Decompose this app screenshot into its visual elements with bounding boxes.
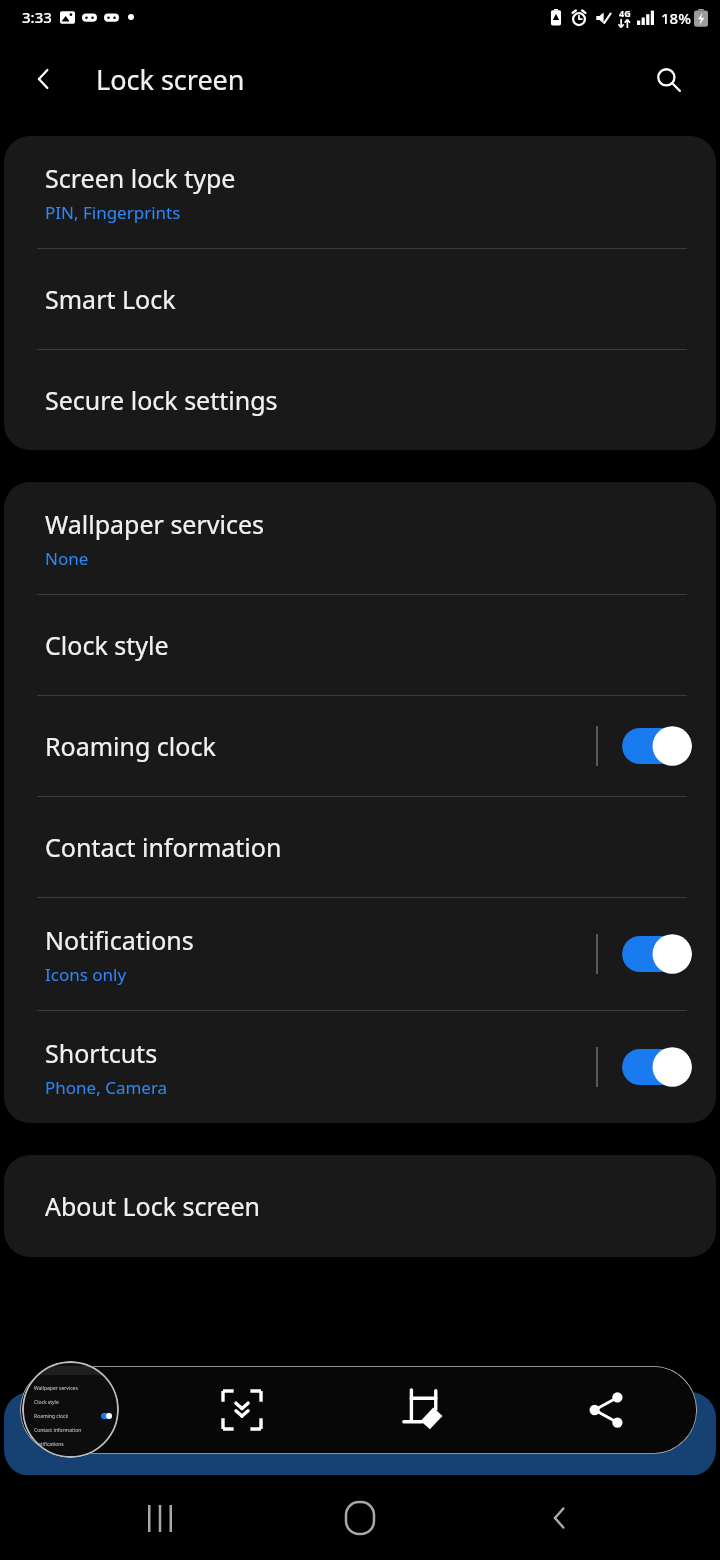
staticText: Notifications	[34, 1441, 115, 1448]
staticText: Wallpaper services	[45, 507, 265, 541]
button[interactable]: About Lock screen	[4, 1155, 716, 1257]
staticText: Clock style	[34, 1399, 115, 1406]
button[interactable]: Home	[320, 1478, 400, 1558]
staticText: Notifications	[45, 923, 194, 957]
staticText: Icons only	[45, 963, 127, 986]
button[interactable]: Looking for something else?	[4, 1392, 716, 1476]
button[interactable]: Recent apps	[120, 1478, 200, 1558]
button[interactable]: Contact information	[4, 797, 716, 897]
button[interactable]: Roaming clock	[4, 696, 716, 796]
button[interactable]: Screenshot preview	[22, 1361, 119, 1458]
staticText: Smart Lock	[45, 282, 176, 316]
button[interactable]: Shortcuts	[4, 1011, 716, 1123]
button[interactable]: Toggle on	[622, 725, 692, 767]
button[interactable]: Notifications	[4, 898, 716, 1010]
staticText: Phone, Camera	[45, 1076, 168, 1099]
button[interactable]: Clock style	[4, 595, 716, 695]
button[interactable]: Crop and draw	[333, 1366, 515, 1454]
button[interactable]: Toggle on	[622, 933, 692, 975]
staticText: 18%	[661, 8, 691, 28]
staticText: Looking for something else?	[45, 1417, 377, 1451]
staticText: About Lock screen	[45, 1189, 260, 1223]
button[interactable]: Search	[642, 53, 694, 105]
staticText: Roaming clock	[45, 729, 216, 763]
staticText: Lock screen	[96, 61, 245, 98]
button[interactable]: Scroll capture	[150, 1366, 333, 1454]
button[interactable]: Secure lock settings	[4, 350, 716, 450]
staticText: Contact information	[45, 830, 282, 864]
button[interactable]: Back	[520, 1478, 600, 1558]
staticText: PIN, Fingerprints	[45, 201, 181, 224]
button[interactable]: Smart Lock	[4, 249, 716, 349]
staticText: Clock style	[45, 628, 169, 662]
staticText: Contact information	[34, 1427, 115, 1434]
staticText: Wallpaper services	[34, 1385, 115, 1392]
button[interactable]: Navigate up	[18, 53, 70, 105]
button[interactable]: Share	[515, 1366, 697, 1454]
staticText: Shortcuts	[45, 1036, 158, 1070]
staticText: Roaming clock	[34, 1413, 101, 1420]
button[interactable]: Screen lock type	[4, 136, 716, 248]
staticText: Secure lock settings	[45, 383, 278, 417]
staticText: Screen lock type	[45, 161, 236, 195]
staticText: 4G	[619, 7, 631, 19]
button[interactable]: Wallpaper services	[4, 482, 716, 594]
staticText: 3:33	[22, 7, 52, 27]
button[interactable]: Toggle on	[622, 1046, 692, 1088]
staticText: None	[45, 547, 89, 570]
